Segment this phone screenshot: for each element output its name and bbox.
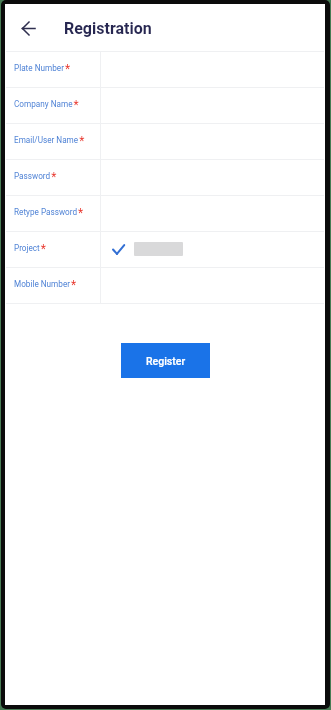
staticText: Email/User Name * [14, 134, 85, 148]
staticText: Project * [14, 242, 46, 256]
staticText: Retype Password * [14, 206, 84, 220]
button[interactable]: Password * [5, 160, 325, 195]
button[interactable]: Plate Number * [5, 52, 325, 87]
button[interactable]: Email/User Name * [5, 124, 325, 159]
button[interactable]: Retype Password * [5, 196, 325, 231]
button[interactable]: Mobile Number * [5, 268, 325, 303]
staticText: Password * [14, 170, 57, 184]
button[interactable]: Back [10, 10, 46, 46]
staticText: Plate Number * [14, 62, 71, 76]
staticText: Mobile Number * [14, 278, 77, 292]
staticText: Registration [64, 19, 152, 38]
button[interactable]: Register [121, 343, 210, 378]
button[interactable]: Company Name * [5, 88, 325, 123]
staticText: Company Name * [14, 98, 79, 112]
button[interactable]: Project * [5, 232, 325, 267]
staticText: Register [146, 355, 186, 367]
